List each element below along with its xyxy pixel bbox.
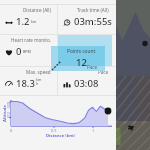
staticText: Points count (67, 48, 96, 55)
staticText: Distance (km) (46, 133, 75, 139)
staticText: km h (36, 77, 42, 86)
staticText: 03:08 (74, 77, 99, 90)
staticText: 0.5 (51, 128, 57, 133)
staticText: 0 (16, 45, 22, 58)
staticText: 312 (5, 111, 10, 118)
button[interactable]: Points count (58, 46, 105, 66)
other: Track time (All) (63, 18, 71, 26)
staticText: km (31, 19, 37, 24)
staticText: 12 (76, 56, 87, 69)
staticText: 03m:55s (74, 15, 112, 28)
other: Max. speed (5, 80, 13, 88)
other: Distance (All) (5, 18, 13, 26)
button[interactable]: Track time (All) (58, 5, 115, 34)
button[interactable]: Heart rate monito. (0, 35, 57, 64)
staticText: 18.3 (16, 77, 35, 90)
staticText: 320 (5, 101, 10, 108)
staticText: Pace (87, 64, 98, 70)
staticText: Heart rate monito. (11, 37, 51, 43)
other: Heart rate monito. (5, 48, 13, 56)
staticText: BPM (23, 49, 31, 54)
staticText: 1 (92, 128, 95, 133)
button[interactable]: Distance (All) (0, 5, 57, 34)
staticText: 0 (10, 128, 13, 133)
button[interactable]: Pace (58, 67, 115, 96)
staticText: Pace (98, 69, 109, 75)
other: Pace (63, 80, 71, 88)
staticText: Track time (All) (77, 7, 109, 13)
staticText: Altitude (m) (2, 100, 8, 122)
staticText: 1.2 (16, 15, 30, 28)
staticText: Max. speed (26, 69, 51, 75)
button[interactable]: Max. speed (0, 67, 57, 96)
staticText: Distance (All) (23, 7, 51, 13)
